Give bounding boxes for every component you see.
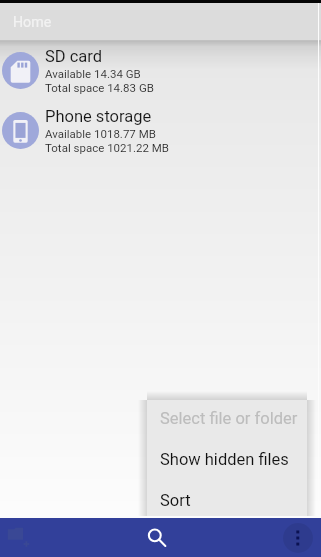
staticText: SD card xyxy=(45,47,103,66)
staticText: Phone storage xyxy=(45,107,152,126)
button[interactable]: Search xyxy=(138,518,176,557)
staticText: Available 14.34 GB xyxy=(45,67,141,80)
staticText: Sort xyxy=(160,491,191,510)
staticText: Total space 14.83 GB xyxy=(45,81,154,94)
button[interactable]: Show hidden files xyxy=(147,439,307,480)
staticText: Available 1018.77 MB xyxy=(45,127,156,140)
button[interactable]: Phone storage xyxy=(0,101,321,160)
button[interactable]: SD card xyxy=(0,41,321,100)
button[interactable]: Sort xyxy=(147,480,307,521)
staticText: Show hidden files xyxy=(160,450,289,469)
button[interactable]: Select file or folder xyxy=(147,398,307,439)
button[interactable]: More options xyxy=(281,518,314,557)
staticText: Home xyxy=(13,14,52,31)
staticText: Select file or folder xyxy=(160,409,298,428)
staticText: Total space 1021.22 MB xyxy=(45,141,170,154)
